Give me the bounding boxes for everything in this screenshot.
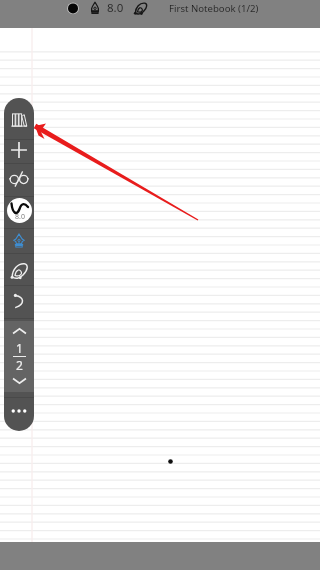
button[interactable]: Shape tool	[4, 287, 34, 315]
button[interactable]: Next page	[4, 369, 34, 391]
button[interactable]: Lasso select	[133, 1, 148, 16]
button[interactable]: Notebooks	[4, 106, 34, 134]
button[interactable]: Page 1 of 2	[4, 339, 34, 374]
button[interactable]: Pen tool	[88, 1, 102, 15]
button[interactable]: More options	[4, 393, 34, 429]
button[interactable]: Colour	[65, 2, 81, 18]
staticText: 1	[16, 340, 23, 356]
button[interactable]: Fountain pen	[4, 227, 34, 255]
button[interactable]: Previous page	[4, 321, 34, 341]
staticText: 8.0	[107, 0, 124, 16]
button[interactable]: Add page	[4, 136, 34, 164]
button[interactable]: Reading mode	[4, 165, 34, 193]
staticText: 8.0	[15, 212, 25, 222]
button[interactable]: Stroke width 8.0	[4, 195, 34, 225]
staticText: 2	[16, 357, 23, 373]
button[interactable]: First Notebook (1/2)	[169, 2, 259, 15]
button[interactable]: Lasso	[4, 257, 34, 285]
